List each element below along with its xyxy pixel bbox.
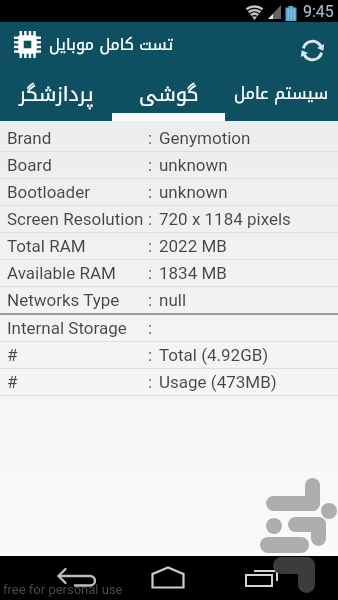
- staticText: unknown: [159, 155, 228, 175]
- button[interactable]: [151, 566, 185, 589]
- staticText: Bootloader: [7, 182, 90, 202]
- staticText: 9:45: [303, 2, 334, 21]
- staticText: :: [148, 372, 153, 392]
- button[interactable]: پردازشگر: [0, 66, 112, 121]
- button[interactable]: Networks Type: [0, 287, 338, 313]
- button[interactable]: Internal Storage: [0, 315, 338, 341]
- button[interactable]: Available RAM: [0, 260, 338, 286]
- staticText: 2022 MB: [159, 236, 227, 256]
- staticText: :: [148, 128, 153, 148]
- button[interactable]: سیستم عامل: [225, 66, 338, 121]
- button[interactable]: گوشی: [112, 66, 225, 121]
- staticText: Board: [7, 155, 52, 175]
- staticText: 720 x 1184 pixels: [159, 209, 291, 229]
- button[interactable]: Brand: [0, 125, 338, 151]
- staticText: Screen Resolution: [7, 209, 144, 229]
- button[interactable]: #: [0, 369, 338, 395]
- staticText: Internal Storage: [7, 318, 127, 338]
- staticText: :: [148, 155, 153, 175]
- staticText: :: [148, 236, 153, 256]
- staticText: unknown: [159, 182, 228, 202]
- button[interactable]: Board: [0, 152, 338, 178]
- staticText: 1834 MB: [159, 263, 227, 283]
- staticText: Total RAM: [7, 236, 86, 256]
- staticText: Genymotion: [159, 128, 251, 148]
- staticText: :: [148, 182, 153, 202]
- staticText: :: [148, 209, 153, 229]
- staticText: :: [148, 318, 153, 338]
- button[interactable]: Bootloader: [0, 179, 338, 205]
- staticText: :: [148, 345, 153, 365]
- staticText: Brand: [7, 128, 52, 148]
- staticText: Available RAM: [7, 263, 116, 283]
- staticText: null: [159, 290, 187, 310]
- button[interactable]: Total RAM: [0, 233, 338, 259]
- button[interactable]: تست کامل موبایل: [0, 22, 338, 66]
- button[interactable]: [299, 37, 325, 63]
- staticText: :: [148, 290, 153, 310]
- staticText: Total (4.92GB): [159, 345, 269, 365]
- button[interactable]: [55, 564, 97, 592]
- staticText: گوشی: [139, 75, 199, 113]
- button[interactable]: Screen Resolution: [0, 206, 338, 232]
- button[interactable]: #: [0, 342, 338, 368]
- staticText: Usage (473MB): [159, 372, 277, 392]
- staticText: #: [7, 345, 18, 365]
- staticText: پردازشگر: [19, 75, 94, 113]
- staticText: :: [148, 263, 153, 283]
- staticText: سیستم عامل: [234, 78, 329, 109]
- staticText: تست کامل موبایل: [49, 29, 174, 59]
- staticText: #: [7, 372, 18, 392]
- staticText: Networks Type: [7, 290, 120, 310]
- button[interactable]: [245, 569, 279, 588]
- staticText: free for personal use: [3, 582, 123, 597]
